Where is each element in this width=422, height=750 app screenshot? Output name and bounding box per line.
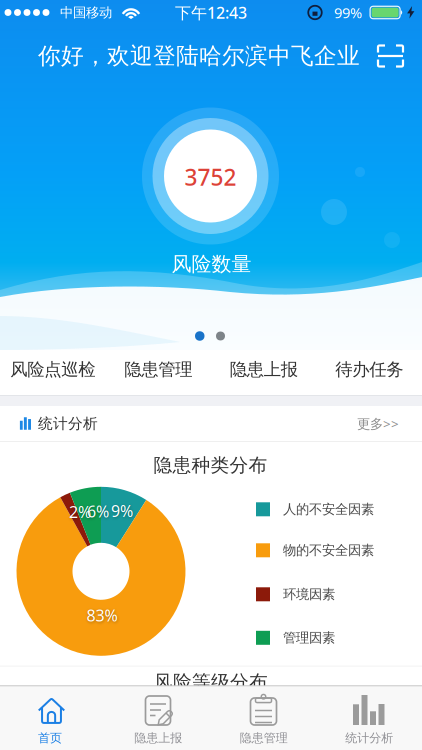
staticText: 6% [87, 501, 109, 522]
button[interactable]: 首页 [0, 685, 105, 750]
button[interactable]: 待办任务 [316, 350, 422, 395]
button[interactable]: 隐患管理 [105, 350, 211, 395]
staticText: 统计分析 [38, 414, 98, 432]
staticText: 风险数量 [171, 252, 251, 276]
staticText: 隐患种类分布 [153, 454, 267, 477]
staticText: 管理因素 [283, 630, 335, 646]
staticText: 人的不安全因素 [283, 501, 374, 517]
button[interactable]: 隐患管理 [211, 685, 316, 750]
staticText: 隐患上报 [230, 359, 298, 380]
staticText: 隐患管理 [124, 359, 192, 380]
staticText: 隐患管理 [240, 731, 288, 745]
staticText: 2% [69, 501, 91, 522]
staticText: 环境因素 [283, 586, 335, 602]
staticText: 统计分析 [345, 731, 393, 745]
button[interactable]: 隐患上报 [105, 685, 211, 750]
button[interactable]: 风险点巡检 [0, 350, 105, 395]
staticText: 物的不安全因素 [283, 542, 374, 558]
button[interactable]: 隐患上报 [211, 350, 316, 395]
staticText: 待办任务 [335, 359, 403, 380]
staticText: 风险等级分布 [154, 671, 268, 693]
staticText: 3752 [184, 162, 236, 192]
staticText: 隐患上报 [134, 731, 182, 745]
staticText: 首页 [38, 731, 62, 745]
staticText: 更多>> [357, 415, 399, 432]
staticText: 下午12:43 [175, 2, 247, 23]
staticText: 83% [86, 605, 117, 626]
staticText: 9% [111, 500, 133, 521]
staticText: 风险点巡检 [10, 359, 95, 380]
button[interactable]: 统计分析 [316, 685, 422, 750]
staticText: 中国移动 [60, 4, 112, 21]
button[interactable]: 扫一扫 [378, 45, 422, 66]
staticText: 99% [334, 3, 362, 22]
staticText: 你好，欢迎登陆哈尔滨中飞企业 [38, 42, 360, 70]
button[interactable]: 更多>> [357, 415, 399, 432]
